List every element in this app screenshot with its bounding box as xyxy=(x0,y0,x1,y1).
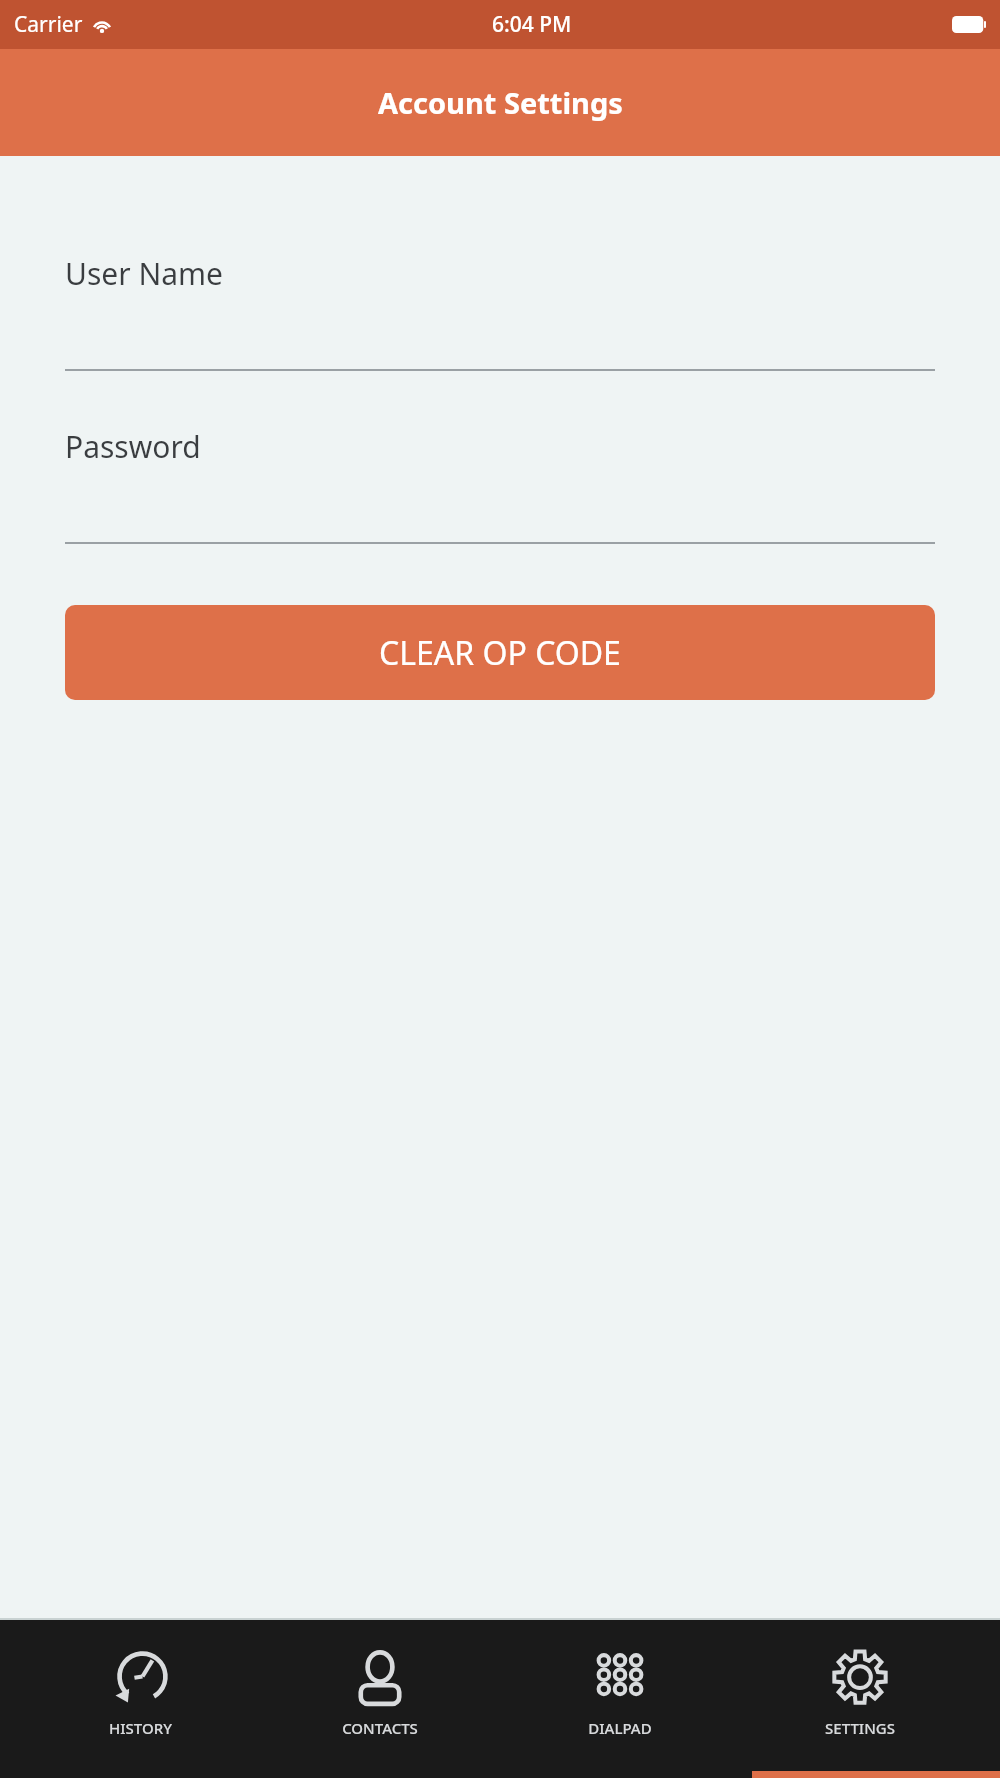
button[interactable]: CLEAR OP CODE xyxy=(65,605,935,700)
button[interactable]: Contacts xyxy=(280,1648,480,1738)
staticText: 6:04 PM xyxy=(492,10,572,39)
other: Settings xyxy=(829,1648,891,1710)
staticText: DIALPAD xyxy=(588,1718,652,1738)
staticText: SETTINGS xyxy=(825,1718,895,1738)
staticText: Carrier xyxy=(14,10,83,39)
button[interactable]: Password xyxy=(65,426,935,544)
other: History xyxy=(109,1648,171,1710)
button[interactable]: Settings xyxy=(760,1648,960,1738)
staticText: Account Settings xyxy=(378,83,623,122)
other: Dialpad xyxy=(589,1648,651,1710)
staticText: Password xyxy=(65,426,201,467)
other: Contacts xyxy=(349,1648,411,1710)
button[interactable]: Dialpad xyxy=(520,1648,720,1738)
staticText: User Name xyxy=(65,253,224,294)
staticText: HISTORY xyxy=(109,1718,172,1738)
button[interactable]: History xyxy=(40,1648,240,1738)
staticText: CONTACTS xyxy=(342,1718,418,1738)
button[interactable]: User Name xyxy=(65,253,935,371)
staticText: CLEAR OP CODE xyxy=(379,631,621,675)
